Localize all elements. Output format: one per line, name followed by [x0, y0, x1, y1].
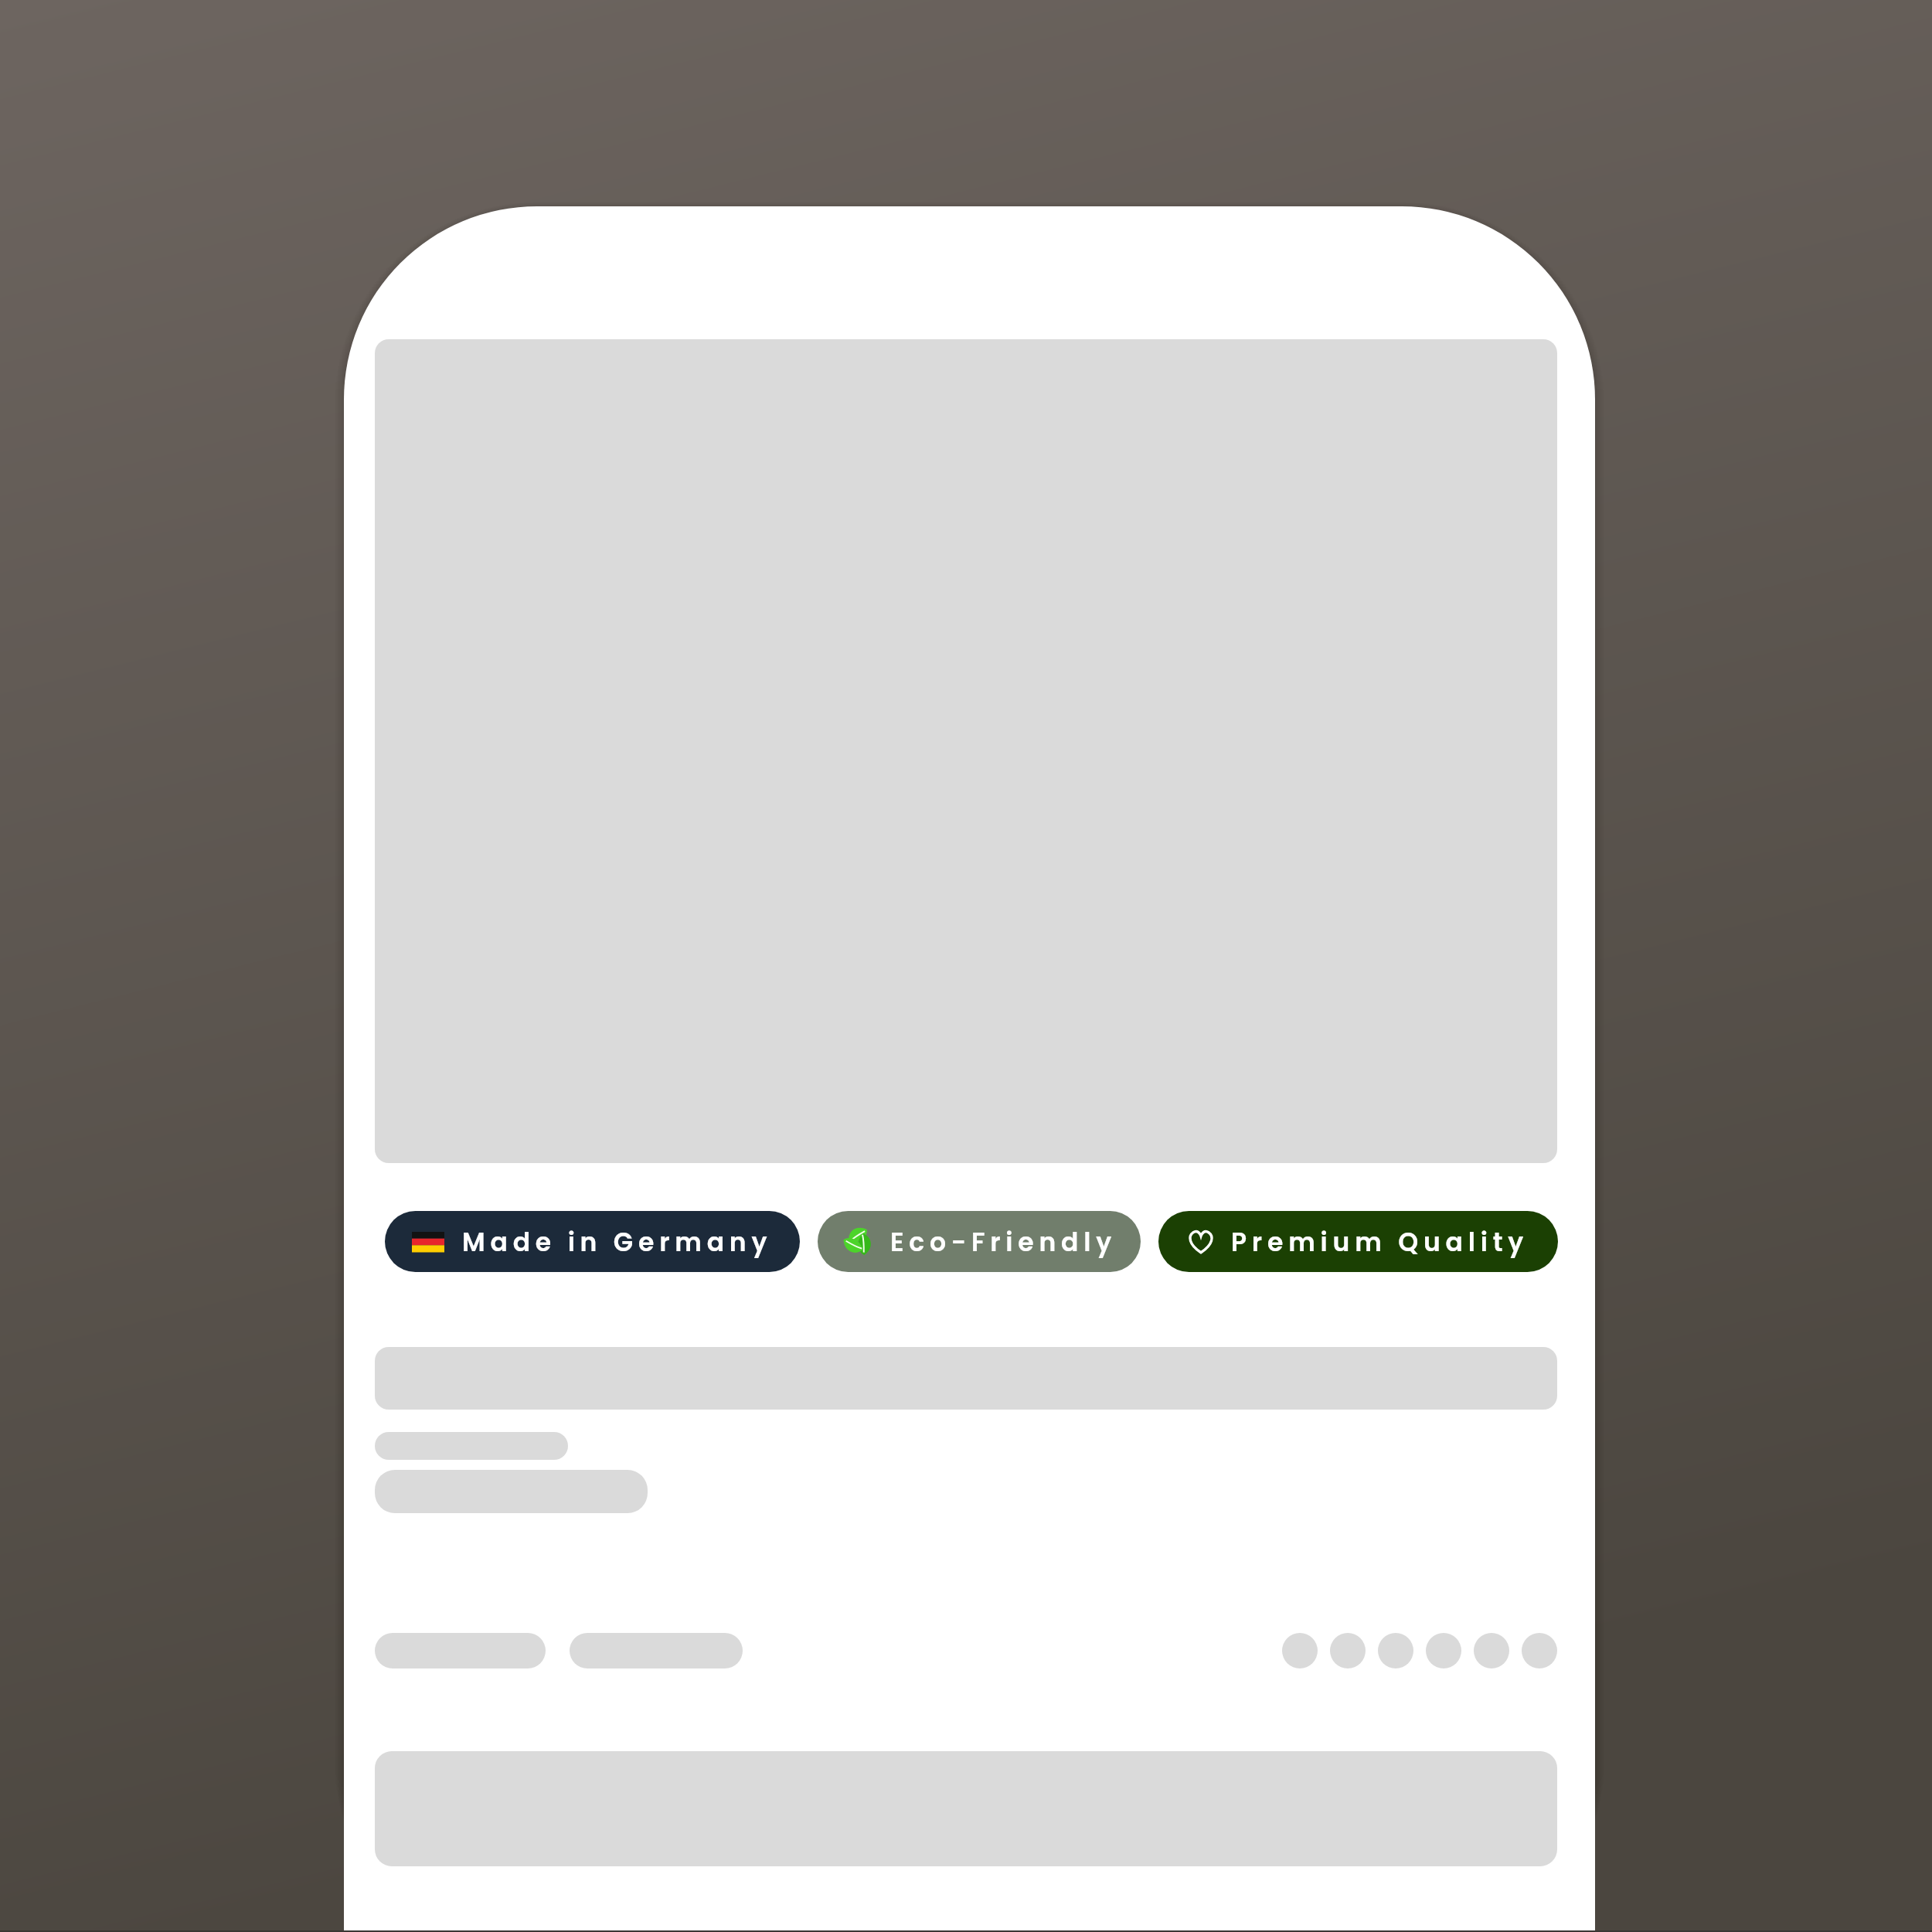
staticText: Premium Quality [1231, 1224, 1529, 1260]
button[interactable]: Option [375, 1633, 546, 1668]
button[interactable]: Premium quality [1158, 1211, 1558, 1272]
staticText: Made in Germany [462, 1224, 773, 1260]
button[interactable]: Add to cart [375, 1751, 1557, 1866]
other: Germany flag [412, 1232, 444, 1252]
other: Recycle [842, 1225, 875, 1258]
staticText: Eco-Friendly [890, 1224, 1117, 1260]
other: Premium quality [1188, 1230, 1214, 1253]
button[interactable]: Recycle [818, 1211, 1141, 1272]
button[interactable]: Option [570, 1633, 743, 1668]
button[interactable]: Germany flag [385, 1211, 800, 1272]
